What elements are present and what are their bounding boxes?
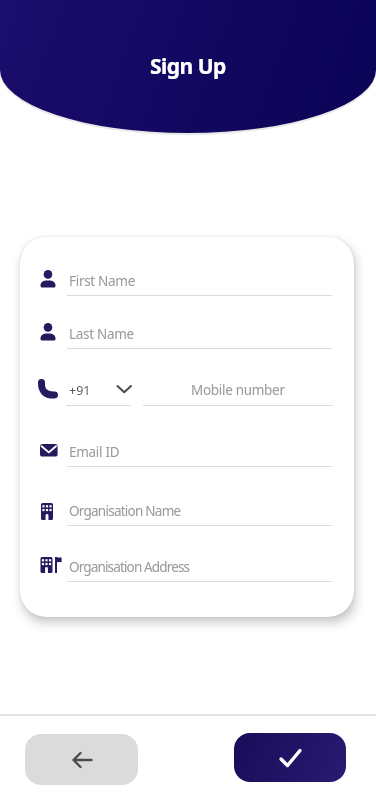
staticText: Organisation Name <box>69 502 181 520</box>
button[interactable] <box>40 320 332 350</box>
button[interactable] <box>40 497 332 527</box>
staticText: Last Name <box>69 325 134 343</box>
staticText: Email ID <box>69 443 120 461</box>
button[interactable] <box>234 733 346 782</box>
button[interactable] <box>40 553 332 583</box>
staticText: Sign Up <box>150 52 226 81</box>
button[interactable] <box>40 438 332 468</box>
button[interactable] <box>25 734 138 785</box>
staticText: First Name <box>69 272 135 290</box>
button[interactable] <box>40 267 332 297</box>
staticText: +91 <box>69 382 91 399</box>
button[interactable] <box>66 376 132 406</box>
staticText: Organisation Address <box>69 558 190 576</box>
staticText: Mobile number <box>191 381 285 399</box>
button[interactable] <box>143 376 333 406</box>
